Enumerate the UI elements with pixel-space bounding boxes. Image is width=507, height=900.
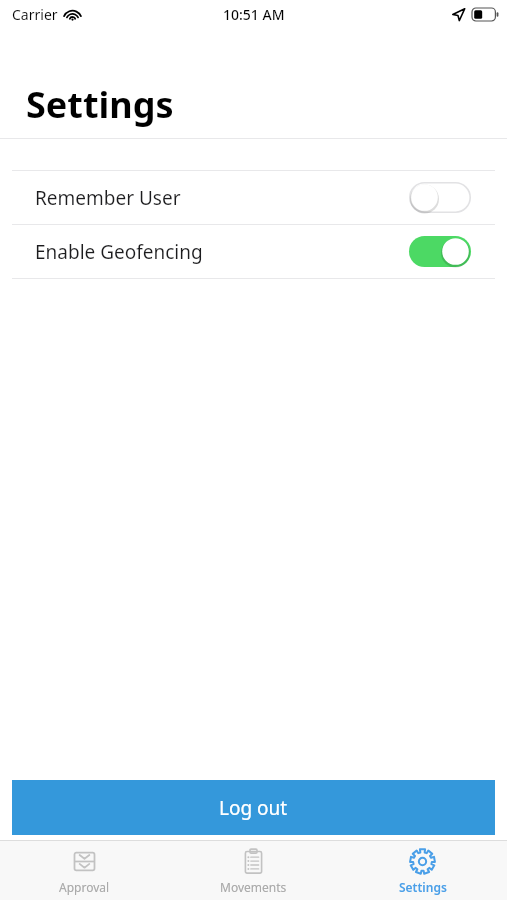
staticText: 10:51 AM bbox=[223, 5, 285, 24]
button[interactable]: Movements bbox=[169, 841, 338, 900]
staticText: Carrier bbox=[12, 5, 58, 24]
staticText: Settings bbox=[26, 80, 174, 129]
staticText: Movements bbox=[220, 879, 287, 895]
button[interactable]: Approval bbox=[0, 841, 169, 900]
button[interactable]: Remember User bbox=[0, 171, 507, 224]
button[interactable]: Toggle on bbox=[409, 236, 471, 267]
button[interactable]: Toggle off bbox=[409, 182, 471, 213]
button[interactable]: Settings bbox=[338, 841, 507, 900]
staticText: Log out bbox=[219, 795, 288, 821]
button[interactable]: Log out bbox=[12, 780, 495, 835]
staticText: Settings bbox=[399, 879, 447, 895]
button[interactable]: Enable Geofencing bbox=[0, 225, 507, 278]
staticText: Remember User bbox=[35, 185, 181, 211]
staticText: Approval bbox=[59, 879, 110, 895]
staticText: Enable Geofencing bbox=[35, 239, 203, 265]
